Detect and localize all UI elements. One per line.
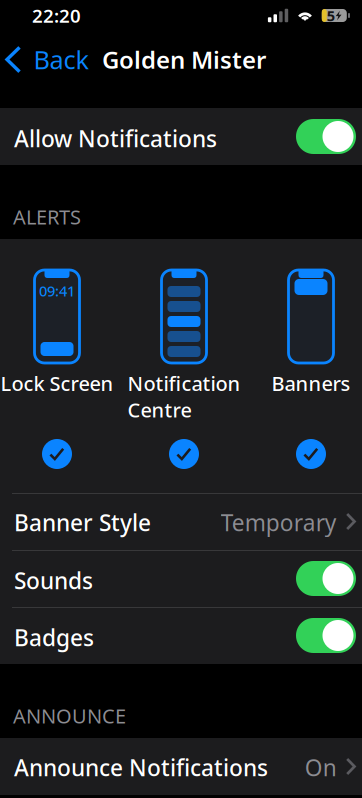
button[interactable]: 09:41 — [0, 270, 120, 493]
button[interactable]: Badges — [0, 607, 362, 664]
staticText: Banner Style — [14, 507, 151, 537]
staticText: Temporary — [221, 507, 337, 537]
staticText: 5 — [327, 6, 335, 25]
staticText: Banners — [271, 370, 350, 397]
button[interactable]: Notification Centre — [120, 270, 247, 493]
staticText: ALERTS — [13, 203, 81, 230]
staticText: Allow Notifications — [14, 123, 217, 153]
staticText: Announce Notifications — [14, 752, 268, 782]
button[interactable]: Sounds — [0, 550, 362, 607]
staticText: Lock Screen — [0, 370, 113, 397]
staticText: 22:20 — [32, 3, 81, 28]
staticText: Back — [33, 43, 89, 76]
staticText: On — [305, 752, 337, 782]
button[interactable]: Banner Style — [0, 493, 362, 550]
staticText: Badges — [14, 622, 94, 652]
staticText: Notification Centre — [127, 370, 240, 423]
button[interactable]: Banners — [247, 270, 362, 493]
staticText: Golden Mister — [102, 44, 266, 75]
button[interactable]: Back — [0, 37, 89, 81]
button[interactable]: Allow Notifications — [0, 108, 362, 165]
button[interactable]: Announce Notifications — [0, 738, 362, 795]
staticText: 09:41 — [39, 281, 75, 300]
staticText: ANNOUNCE — [13, 702, 126, 729]
staticText: Sounds — [14, 565, 93, 595]
